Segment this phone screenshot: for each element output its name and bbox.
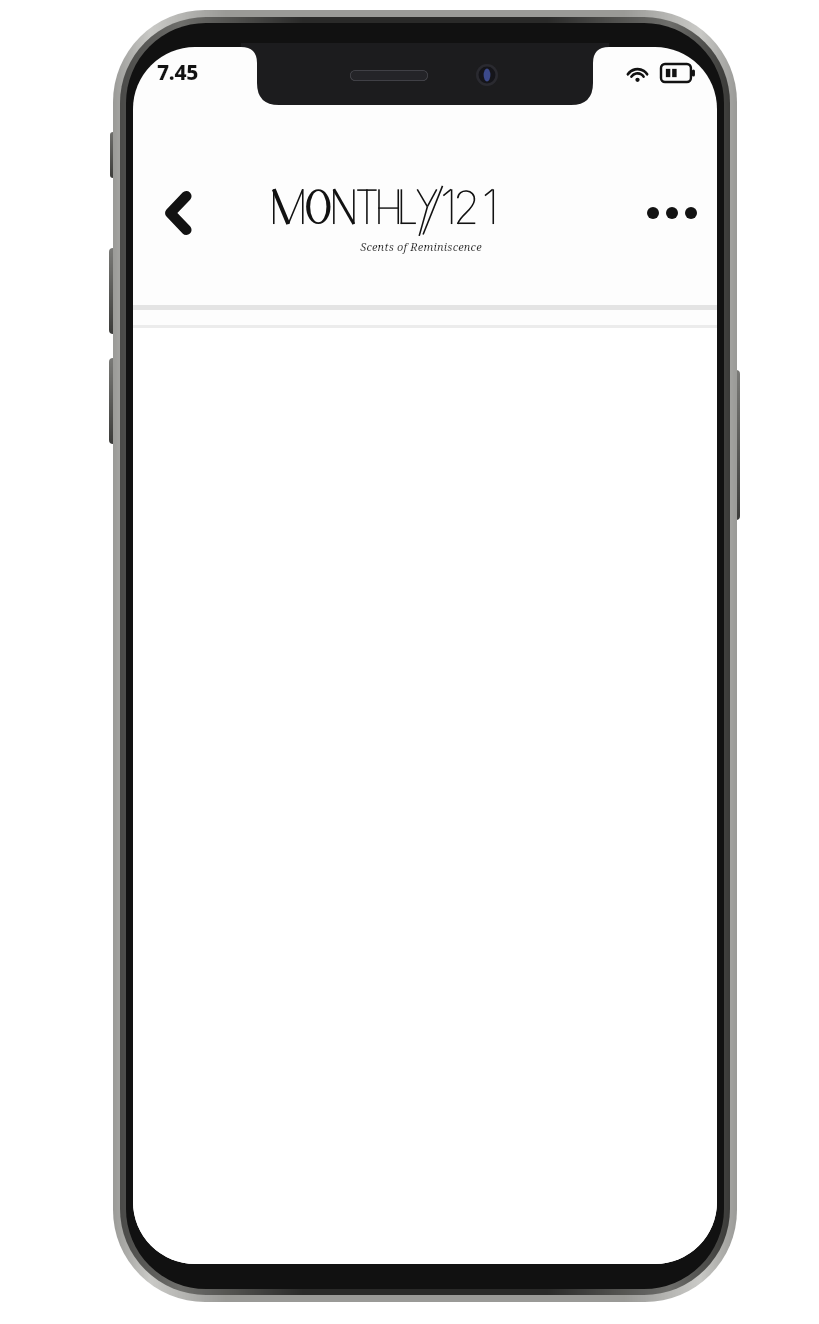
staticText: 7.45 [157, 58, 198, 87]
button[interactable]: More options [641, 187, 703, 239]
staticText: Scents of Reminiscence [360, 239, 482, 254]
button[interactable]: Back [145, 181, 209, 245]
